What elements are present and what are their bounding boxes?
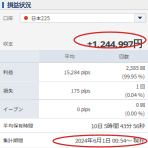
staticText: 集計期間 bbox=[3, 137, 23, 144]
staticText: 0 pips bbox=[77, 105, 90, 113]
staticText: 平均保有時間 bbox=[3, 122, 33, 129]
staticText: 1 回 bbox=[136, 83, 145, 90]
staticText: 175 pips bbox=[71, 87, 90, 94]
staticText: 0 回 bbox=[136, 101, 145, 108]
staticText: (0.04 %) bbox=[125, 91, 145, 98]
staticText: (99.95 %) bbox=[122, 72, 145, 80]
staticText: 2024年6月1日 00:54～ 現在 bbox=[75, 136, 145, 145]
staticText: イーブン bbox=[3, 105, 23, 113]
staticText: 10日 5時間 43分 56秒 bbox=[91, 121, 145, 130]
staticText: 損益状況 bbox=[7, 1, 31, 9]
staticText: 回数 bbox=[119, 53, 129, 60]
staticText: 15,284 pips bbox=[64, 68, 90, 76]
staticText: +1,244,997円 bbox=[87, 37, 143, 50]
staticText: 損失 bbox=[3, 87, 13, 94]
staticText: (0.00 %) bbox=[125, 109, 145, 117]
button[interactable]: 日本225 bbox=[20, 13, 146, 22]
staticText: 口座 bbox=[3, 14, 13, 22]
staticText: 平均 bbox=[64, 53, 74, 60]
staticText: 利益 bbox=[3, 68, 13, 76]
staticText: 2,385 回 bbox=[126, 64, 145, 71]
staticText: 収支 bbox=[3, 40, 13, 47]
staticText: 日本225 bbox=[31, 14, 50, 22]
